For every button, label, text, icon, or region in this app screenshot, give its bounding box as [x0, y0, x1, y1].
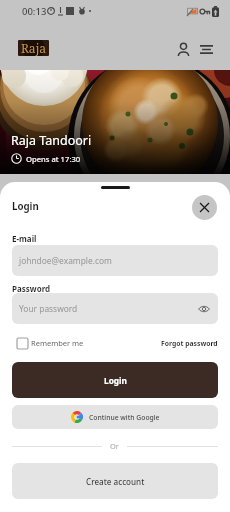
button[interactable]: Create account [12, 463, 218, 499]
staticText: Opens at 17:30 [26, 154, 81, 164]
staticText: Your password [19, 303, 78, 314]
staticText: Raja Tandoori [11, 132, 92, 149]
button[interactable]: Remember me [17, 336, 84, 350]
button[interactable]: Show password [195, 300, 213, 318]
staticText: Continue with Google [89, 413, 160, 422]
staticText: Password [12, 283, 51, 294]
button[interactable]: Forgot password [161, 339, 218, 348]
button[interactable]: Raja home [18, 40, 49, 56]
staticText: Login [12, 200, 39, 213]
staticText: Raja [21, 40, 46, 56]
staticText: Create account [86, 476, 145, 487]
button[interactable]: Continue with Google [12, 405, 218, 429]
button[interactable]: Menu [192, 35, 220, 63]
button[interactable]: johndoe@example.com [12, 245, 218, 276]
button[interactable]: Your password [12, 293, 218, 324]
staticText: johndoe@example.com [19, 255, 112, 266]
staticText: Remember me [31, 338, 84, 348]
staticText: Login [104, 375, 127, 386]
button[interactable]: Close [192, 195, 217, 220]
button[interactable]: Account [169, 35, 197, 63]
staticText: 00:13 [22, 5, 47, 18]
staticText: Or [110, 441, 119, 451]
button[interactable]: Login [12, 362, 218, 398]
staticText: E-mail [12, 233, 37, 244]
